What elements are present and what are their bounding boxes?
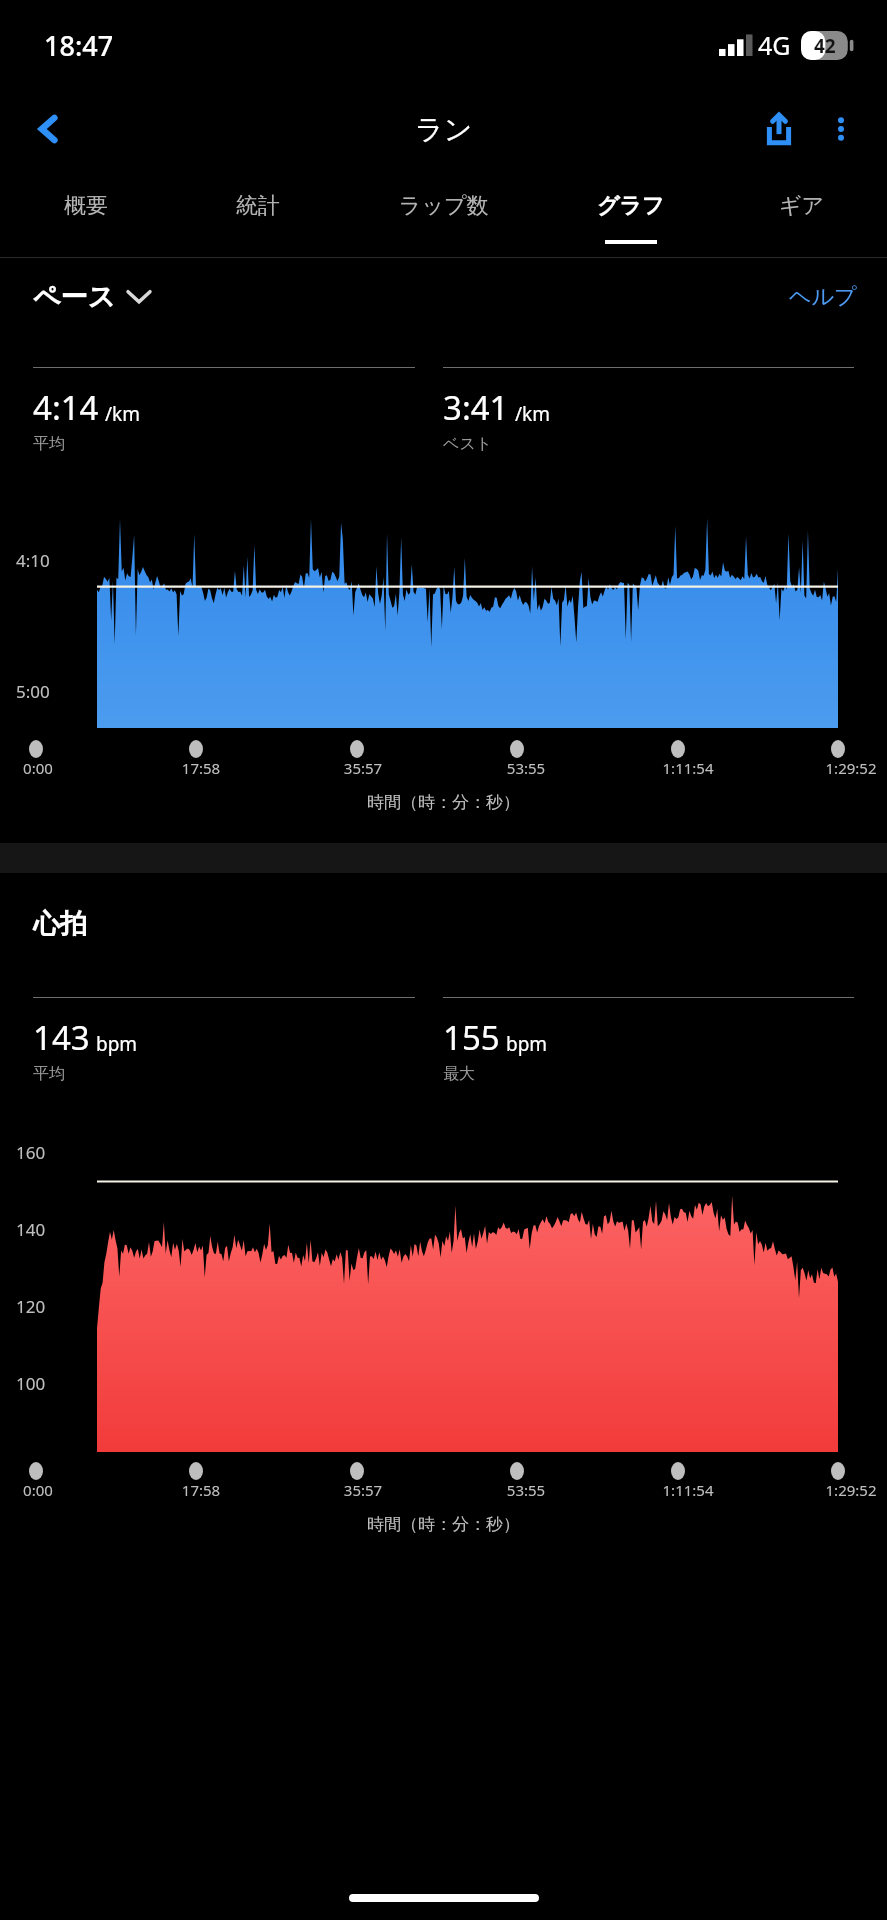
- staticText: 1:29:52: [823, 758, 879, 778]
- staticText: /km: [515, 401, 550, 427]
- staticText: 53:55: [498, 758, 554, 778]
- button[interactable]: グラフ: [545, 168, 716, 258]
- staticText: 4:14: [33, 385, 99, 430]
- staticText: 3:41: [443, 385, 509, 430]
- staticText: 42: [814, 33, 836, 59]
- staticText: 53:55: [498, 1480, 554, 1500]
- staticText: 1:11:54: [660, 1480, 716, 1500]
- staticText: ヘルプ: [789, 283, 857, 311]
- staticText: 35:57: [335, 758, 391, 778]
- staticText: 120: [16, 1295, 46, 1318]
- staticText: ギア: [779, 192, 825, 220]
- button[interactable]: 概要: [0, 168, 172, 258]
- staticText: 143: [33, 1015, 90, 1060]
- staticText: 時間（時：分：秒）: [0, 1514, 887, 1535]
- staticText: ペース: [33, 280, 116, 314]
- staticText: 心拍: [33, 907, 87, 941]
- staticText: 0:00: [10, 1480, 66, 1500]
- button[interactable]: More options: [811, 99, 871, 159]
- staticText: 最大: [443, 1064, 475, 1084]
- staticText: 4:10: [16, 549, 50, 572]
- staticText: 17:58: [173, 1480, 229, 1500]
- button[interactable]: ラップ数: [343, 168, 545, 258]
- staticText: bpm: [506, 1031, 548, 1057]
- staticText: 統計: [236, 192, 280, 220]
- staticText: 160: [16, 1141, 46, 1164]
- staticText: 0:00: [10, 758, 66, 778]
- staticText: bpm: [96, 1031, 138, 1057]
- staticText: ベスト: [443, 434, 493, 454]
- staticText: ラップ数: [399, 192, 489, 220]
- staticText: 35:57: [335, 1480, 391, 1500]
- staticText: 18:47: [44, 27, 114, 64]
- button[interactable]: Share: [747, 97, 811, 161]
- staticText: 4G: [758, 28, 791, 62]
- button[interactable]: Back: [18, 98, 80, 160]
- button[interactable]: ギア: [716, 168, 887, 258]
- staticText: グラフ: [597, 192, 665, 220]
- staticText: 時間（時：分：秒）: [0, 792, 887, 813]
- staticText: 140: [16, 1218, 46, 1241]
- staticText: 17:58: [173, 758, 229, 778]
- staticText: /km: [105, 401, 140, 427]
- staticText: 平均: [33, 434, 65, 454]
- button[interactable]: ヘルプ: [789, 283, 857, 311]
- staticText: 100: [16, 1372, 46, 1395]
- button[interactable]: 統計: [172, 168, 343, 258]
- staticText: 平均: [33, 1064, 65, 1084]
- staticText: 概要: [64, 192, 108, 220]
- button[interactable]: ペース: [33, 280, 150, 314]
- staticText: 1:29:52: [823, 1480, 879, 1500]
- staticText: ラン: [415, 112, 473, 147]
- staticText: 155: [443, 1015, 500, 1060]
- staticText: 5:00: [16, 680, 50, 703]
- staticText: 1:11:54: [660, 758, 716, 778]
